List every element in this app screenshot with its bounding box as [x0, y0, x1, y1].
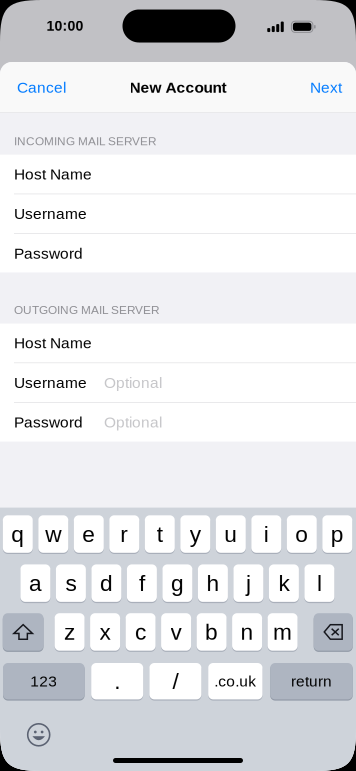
button[interactable]: o [287, 515, 317, 553]
staticText: w [45, 521, 61, 547]
button[interactable]: Host Name [0, 155, 356, 193]
button[interactable]: l [304, 564, 334, 602]
button[interactable]: t [145, 515, 175, 553]
staticText: k [278, 570, 289, 596]
button[interactable]: i [251, 515, 281, 553]
staticText: j [246, 570, 251, 596]
staticText: i [264, 521, 269, 547]
button[interactable]: Emoji keyboard [23, 719, 55, 751]
staticText: Optional [104, 374, 162, 391]
button[interactable]: Username [0, 194, 356, 233]
button[interactable]: Username [0, 363, 356, 402]
staticText: p [331, 521, 344, 547]
staticText: .co.uk [214, 673, 256, 690]
staticText: Host Name [14, 165, 92, 183]
staticText: m [273, 619, 292, 645]
button[interactable]: / [149, 662, 201, 700]
button[interactable]: p [322, 515, 352, 553]
button[interactable]: . [91, 662, 143, 700]
button[interactable]: x [90, 613, 120, 651]
staticText: y [190, 521, 201, 547]
staticText: 10:00 [46, 18, 83, 34]
staticText: t [157, 521, 163, 547]
button[interactable]: k [269, 564, 299, 602]
button[interactable]: Shift [3, 613, 43, 651]
staticText: b [205, 619, 218, 645]
staticText: z [64, 619, 75, 645]
button[interactable]: Delete [314, 613, 353, 651]
button[interactable]: r [109, 515, 139, 553]
staticText: INCOMING MAIL SERVER [14, 134, 157, 148]
staticText: r [120, 521, 128, 547]
staticText: g [171, 570, 184, 596]
button[interactable]: q [3, 515, 33, 553]
staticText: return [291, 673, 332, 690]
staticText: . [114, 668, 120, 694]
button[interactable]: w [38, 515, 68, 553]
button[interactable]: b [197, 613, 227, 651]
button[interactable]: Cancel [0, 62, 80, 113]
button[interactable]: .co.uk [208, 662, 262, 700]
button[interactable]: y [180, 515, 210, 553]
staticText: x [100, 619, 111, 645]
staticText: n [241, 619, 254, 645]
staticText: s [65, 570, 76, 596]
button[interactable]: u [216, 515, 246, 553]
staticText: u [224, 521, 237, 547]
staticText: Password [14, 414, 83, 431]
button[interactable]: Next [296, 62, 356, 113]
button[interactable]: s [56, 564, 86, 602]
staticText: OUTGOING MAIL SERVER [14, 303, 160, 317]
staticText: e [82, 521, 95, 547]
button[interactable]: n [232, 613, 262, 651]
staticText: c [135, 619, 146, 645]
button[interactable]: a [20, 564, 50, 602]
staticText: New Account [129, 79, 226, 96]
button[interactable]: e [74, 515, 104, 553]
button[interactable]: Password [0, 234, 356, 273]
staticText: d [100, 570, 113, 596]
staticText: Cancel [17, 79, 66, 96]
staticText: Next [310, 79, 342, 96]
button[interactable]: d [91, 564, 121, 602]
button[interactable]: m [268, 613, 298, 651]
staticText: a [29, 570, 42, 596]
staticText: Optional [104, 414, 162, 431]
staticText: f [139, 570, 145, 596]
staticText: Username [14, 374, 87, 391]
staticText: / [172, 668, 178, 694]
button[interactable]: Host Name [0, 324, 356, 362]
staticText: Password [14, 245, 83, 262]
button[interactable]: g [162, 564, 192, 602]
button[interactable]: f [127, 564, 157, 602]
button[interactable]: c [126, 613, 156, 651]
button[interactable]: return [270, 662, 353, 700]
button[interactable]: v [161, 613, 191, 651]
staticText: l [317, 570, 322, 596]
staticText: o [295, 521, 308, 547]
staticText: q [11, 521, 24, 547]
button[interactable]: z [55, 613, 85, 651]
button[interactable]: Password [0, 403, 356, 442]
button[interactable]: 123 [3, 662, 85, 700]
staticText: h [206, 570, 219, 596]
staticText: 123 [30, 673, 57, 690]
staticText: Host Name [14, 334, 92, 352]
button[interactable]: h [198, 564, 228, 602]
staticText: v [171, 619, 182, 645]
staticText: Username [14, 205, 87, 222]
button[interactable]: j [233, 564, 263, 602]
